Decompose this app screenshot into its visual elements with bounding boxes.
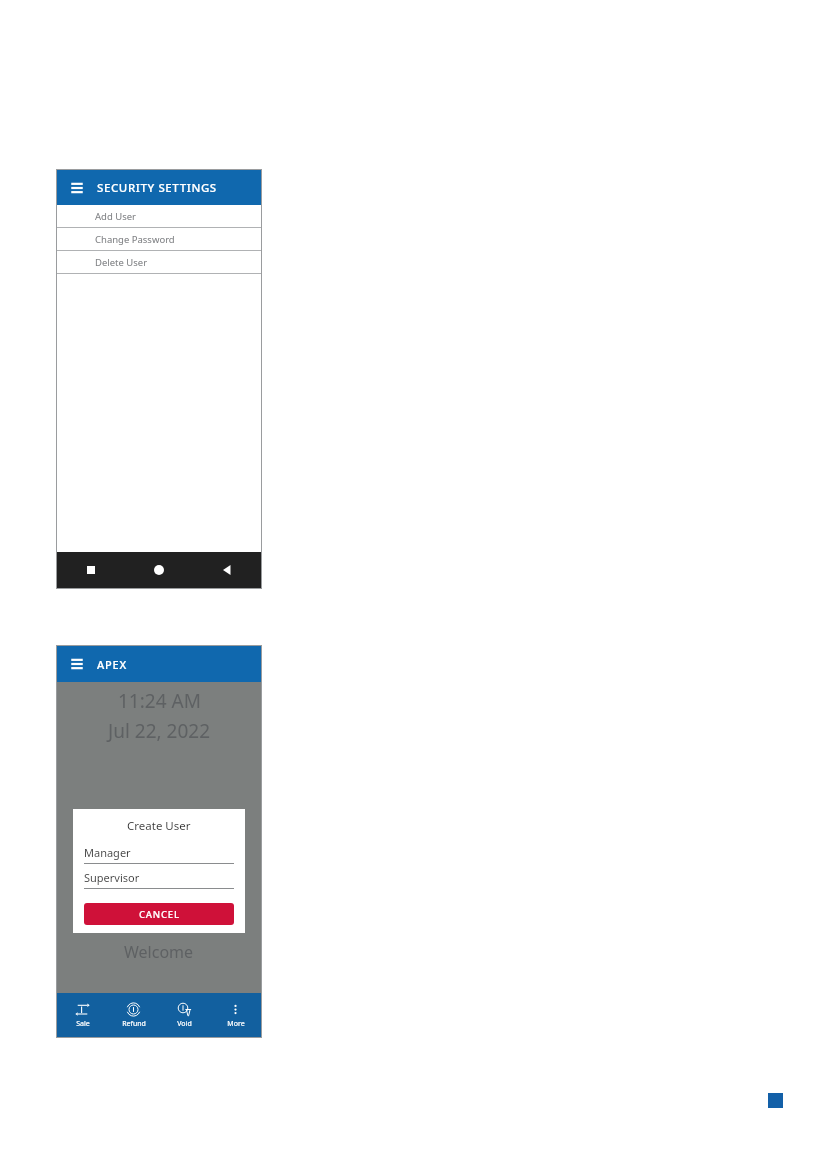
button[interactable]: More (210, 993, 261, 1037)
staticText: Create User (127, 818, 191, 834)
button[interactable]: Supervisor (84, 870, 234, 895)
button[interactable]: Add User (57, 205, 261, 227)
staticText: 11:24 AM (118, 688, 201, 714)
button[interactable]: Menu (66, 177, 88, 199)
button[interactable]: Back (193, 552, 261, 588)
button[interactable]: Void (159, 993, 210, 1037)
button[interactable]: Menu (66, 653, 88, 675)
staticText: SECURITY SETTINGS (97, 180, 217, 196)
button[interactable]: CANCEL (84, 903, 234, 925)
staticText: Delete User (95, 256, 148, 269)
staticText: Welcome (124, 941, 194, 963)
button[interactable]: Refund (108, 993, 159, 1037)
staticText: Add User (95, 210, 137, 223)
staticText: Refund (122, 1019, 146, 1029)
staticText: Sale (76, 1019, 90, 1029)
button[interactable]: Delete User (57, 251, 261, 273)
staticText: CANCEL (139, 908, 180, 921)
staticText: Void (177, 1019, 192, 1029)
staticText: Manager (84, 845, 131, 860)
button[interactable]: Sale (57, 993, 108, 1037)
staticText: APEX (97, 657, 127, 672)
button[interactable]: Manager (84, 845, 234, 870)
staticText: Jul 22, 2022 (108, 718, 211, 744)
button[interactable]: Home (125, 552, 193, 588)
button[interactable]: Change Password (57, 228, 261, 250)
staticText: More (227, 1019, 245, 1029)
button[interactable]: Recent apps (57, 552, 125, 588)
staticText: Supervisor (84, 870, 140, 885)
staticText: Change Password (95, 233, 175, 246)
